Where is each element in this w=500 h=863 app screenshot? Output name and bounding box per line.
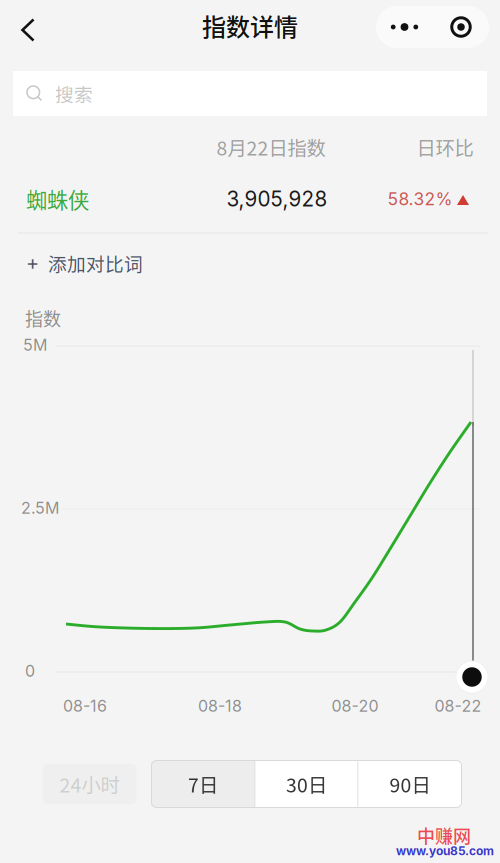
staticText: 0 (25, 661, 35, 681)
staticText: 中赚网 (417, 822, 471, 849)
staticText: + (26, 251, 39, 275)
button[interactable]: + (0, 242, 300, 284)
staticText: 5M (23, 335, 47, 355)
staticText: 90日 (389, 770, 430, 798)
button[interactable]: 30日 (255, 760, 357, 807)
staticText: 08-20 (331, 696, 378, 716)
button[interactable]: 90日 (358, 760, 461, 807)
staticText: 24小时 (59, 770, 119, 798)
button[interactable]: 蜘蛛侠 (26, 183, 116, 215)
staticText: 指数详情 (202, 8, 298, 43)
staticText: 日环比 (416, 133, 473, 161)
button[interactable]: Back (4, 2, 52, 58)
staticText: 7日 (188, 770, 218, 798)
button[interactable]: 24小时 (42, 764, 136, 804)
button[interactable]: 搜索 (13, 71, 487, 116)
staticText: 58.32% (387, 188, 452, 209)
staticText: 8月22日指数 (216, 133, 325, 161)
staticText: 3,905,928 (226, 186, 327, 211)
staticText: 08-18 (198, 696, 242, 716)
staticText: www.you85.com (396, 844, 494, 858)
staticText: 指数 (25, 305, 61, 331)
staticText: 蜘蛛侠 (26, 184, 89, 214)
button[interactable]: More (376, 6, 433, 48)
staticText: 08-16 (63, 696, 107, 716)
staticText: 30日 (286, 770, 327, 798)
button[interactable]: Close (433, 6, 489, 48)
staticText: 搜索 (55, 80, 93, 107)
button[interactable]: 7日 (151, 760, 254, 807)
staticText: 添加对比词 (48, 249, 143, 276)
staticText: 08-22 (434, 696, 481, 716)
staticText: 2.5M (21, 498, 59, 518)
